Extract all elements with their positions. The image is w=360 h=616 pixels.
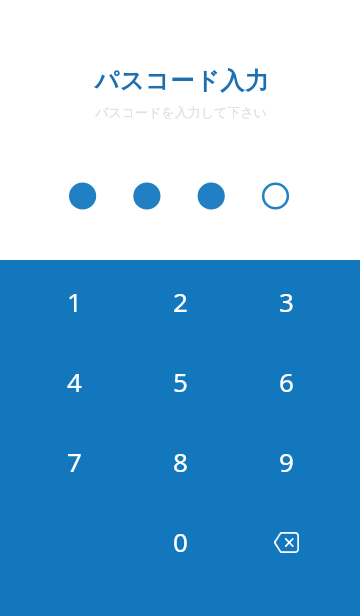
staticText: 8 (173, 444, 188, 479)
button[interactable]: 0 (127, 501, 233, 581)
button[interactable]: 5 (127, 341, 233, 421)
button[interactable]: 6 (233, 341, 339, 421)
button[interactable]: 8 (127, 421, 233, 501)
button[interactable]: 3 (233, 261, 339, 341)
button[interactable]: 2 (127, 261, 233, 341)
staticText: パスコード入力 (94, 66, 270, 96)
staticText: 0 (173, 524, 188, 559)
button[interactable]: 1 (21, 261, 127, 341)
staticText: パスコードを入力して下さい (95, 104, 267, 120)
staticText: 3 (279, 284, 294, 319)
staticText: 9 (279, 444, 294, 479)
staticText: 1 (67, 284, 82, 319)
button[interactable]: 7 (21, 421, 127, 501)
button[interactable]: 9 (233, 421, 339, 501)
staticText: 4 (67, 364, 82, 399)
button[interactable]: 4 (21, 341, 127, 421)
staticText: 7 (67, 444, 82, 479)
button[interactable]: Backspace, delete last digit (233, 501, 339, 581)
staticText: 6 (279, 364, 294, 399)
staticText: 2 (173, 284, 188, 319)
staticText: 5 (173, 364, 188, 399)
